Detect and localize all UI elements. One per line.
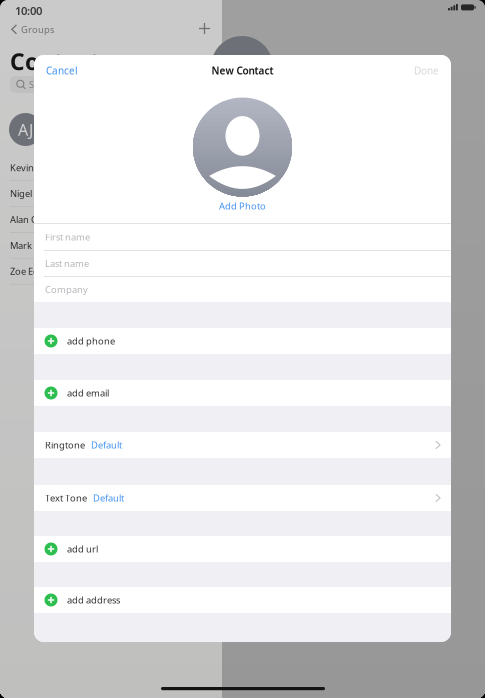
staticText: Default	[93, 492, 124, 504]
staticText: Company	[45, 283, 88, 296]
button[interactable]: Done	[414, 56, 451, 85]
staticText: Last name	[45, 257, 89, 270]
staticText: add address	[67, 594, 120, 606]
staticText: Done	[414, 64, 439, 77]
staticText: New Contact	[211, 64, 273, 77]
button[interactable]: Add Contact	[199, 23, 210, 34]
button[interactable]: add phone	[34, 328, 451, 354]
staticText: add phone	[67, 335, 115, 347]
staticText: Cancel	[46, 64, 78, 77]
staticText: Alan Crichton	[10, 213, 68, 226]
button[interactable]: First name	[34, 224, 451, 250]
staticText: Nigel Barber	[10, 187, 64, 200]
staticText: AJ	[18, 119, 33, 140]
button[interactable]: Kevin Ashton	[0, 155, 222, 181]
button[interactable]: Cancel	[34, 56, 78, 85]
button[interactable]: Groups	[11, 23, 54, 36]
button[interactable]: add address	[34, 587, 451, 613]
button[interactable]: add email	[34, 380, 451, 406]
staticText: First name	[45, 231, 90, 243]
staticText: Groups	[21, 23, 54, 36]
staticText: Mark Dunbar	[10, 239, 68, 252]
button[interactable]: Mark Dunbar	[0, 233, 222, 259]
button[interactable]: Ringtone	[34, 432, 451, 458]
staticText: Text Tone	[45, 492, 87, 504]
button[interactable]: Text Tone	[34, 485, 451, 511]
staticText: Ringtone	[45, 439, 85, 451]
button[interactable]: add url	[34, 536, 451, 562]
staticText: Add Photo	[219, 199, 266, 212]
staticText: add url	[67, 543, 98, 555]
staticText: Search	[29, 78, 58, 91]
staticText: Contacts	[10, 46, 111, 77]
button[interactable]: Add Photo	[209, 196, 276, 216]
button[interactable]: Zoe Edwards	[0, 259, 222, 285]
button[interactable]: Nigel Barber	[0, 181, 222, 207]
staticText: Default	[91, 439, 122, 451]
staticText: Zoe Edwards	[10, 265, 65, 277]
button[interactable]: Alan Crichton	[0, 207, 222, 233]
button[interactable]: Last name	[34, 250, 451, 276]
button[interactable]: Company	[34, 276, 451, 302]
staticText: Kevin Ashton	[10, 161, 67, 174]
staticText: add email	[67, 387, 109, 399]
button[interactable]: Search	[10, 76, 206, 93]
staticText: 10:00	[15, 3, 42, 18]
